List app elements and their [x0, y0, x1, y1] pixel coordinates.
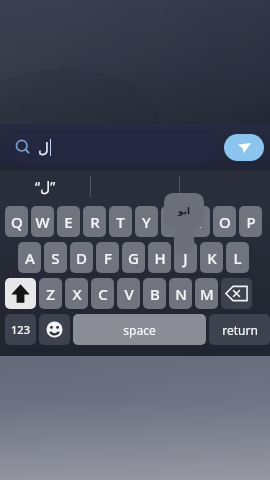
button[interactable]: W — [31, 206, 54, 237]
button[interactable]: M — [195, 278, 218, 309]
staticText: R — [90, 212, 100, 232]
staticText: A — [25, 248, 35, 268]
button[interactable]: Z — [39, 278, 62, 309]
button[interactable]: D — [70, 242, 93, 273]
staticText: “ل” — [35, 177, 56, 196]
button[interactable]: F — [96, 242, 119, 273]
button[interactable]: Y — [135, 206, 158, 237]
button[interactable]: G — [122, 242, 145, 273]
staticText: V — [124, 284, 134, 304]
button[interactable]: Send — [224, 134, 264, 161]
staticText: return — [222, 322, 258, 338]
button[interactable]: H — [148, 242, 171, 273]
button[interactable]: space — [73, 314, 206, 345]
staticText: T — [116, 212, 125, 232]
staticText: F — [104, 248, 112, 268]
staticText: M — [200, 284, 214, 304]
button[interactable]: A — [18, 242, 41, 273]
button[interactable]: Emoji — [39, 314, 70, 345]
button[interactable]: R — [83, 206, 106, 237]
staticText: J — [183, 248, 188, 268]
button[interactable]: L — [226, 242, 249, 273]
staticText: O — [219, 212, 231, 232]
button[interactable]: T — [109, 206, 132, 237]
button[interactable]: O — [213, 206, 236, 237]
button[interactable]: N — [169, 278, 192, 309]
button[interactable]: K — [200, 242, 223, 273]
button[interactable]: C — [91, 278, 114, 309]
button[interactable]: Q — [5, 206, 28, 237]
staticText: D — [76, 248, 87, 268]
staticText: ابو — [178, 206, 191, 216]
button[interactable]: S — [44, 242, 67, 273]
button[interactable]: I — [187, 206, 210, 237]
staticText: E — [64, 212, 73, 232]
button[interactable]: Backspace — [221, 278, 252, 309]
staticText: space — [123, 322, 156, 338]
staticText: C — [98, 284, 108, 304]
button[interactable]: J — [174, 242, 197, 273]
staticText: K — [207, 248, 217, 268]
staticText: L — [233, 248, 242, 268]
staticText: Q — [11, 212, 23, 232]
staticText: U — [167, 212, 179, 232]
button[interactable]: B — [143, 278, 166, 309]
staticText: 123 — [11, 322, 30, 337]
staticText: S — [51, 248, 60, 268]
button[interactable]: P — [239, 206, 262, 237]
button[interactable]: “ل” — [0, 170, 90, 203]
staticText: ل — [38, 139, 49, 156]
button[interactable]: ل — [6, 130, 217, 164]
button[interactable]: U — [161, 206, 184, 237]
button[interactable]: E — [57, 206, 80, 237]
staticText: X — [72, 284, 82, 304]
staticText: P — [246, 212, 256, 232]
staticText: W — [35, 212, 50, 232]
button[interactable]: V — [117, 278, 140, 309]
staticText: I — [196, 212, 202, 232]
staticText: G — [128, 248, 139, 268]
staticText: Z — [46, 284, 55, 304]
staticText: N — [175, 284, 187, 304]
staticText: B — [150, 284, 160, 304]
staticText: Y — [142, 212, 151, 232]
button[interactable]: Shift — [5, 278, 36, 309]
button[interactable]: 123 — [5, 314, 36, 345]
button[interactable]: X — [65, 278, 88, 309]
staticText: H — [154, 248, 166, 268]
button[interactable]: return — [209, 314, 270, 345]
